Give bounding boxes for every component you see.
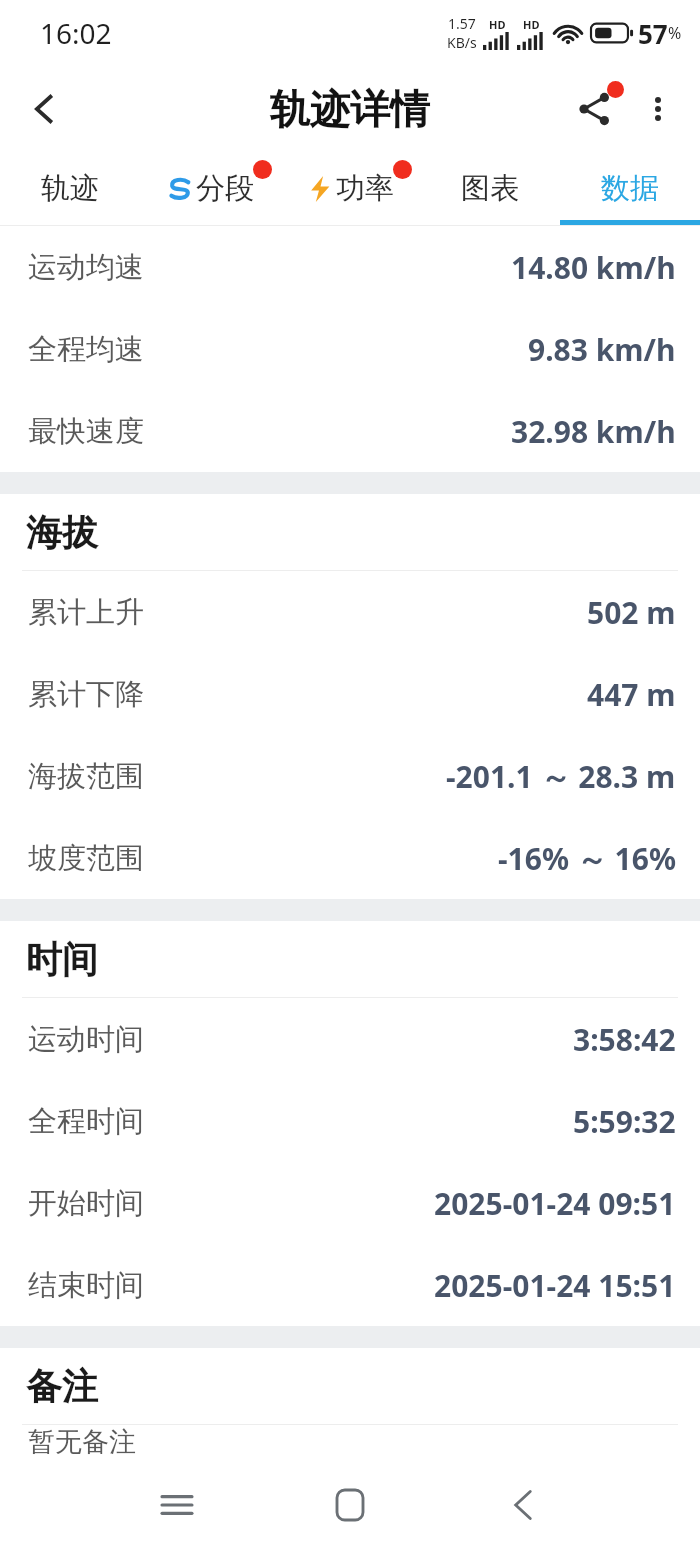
staticText: 5:59:32: [573, 1101, 676, 1142]
staticText: 累计下降: [28, 676, 144, 713]
staticText: 坡度范围: [28, 840, 144, 877]
button[interactable]: Back: [487, 1469, 559, 1541]
button[interactable]: 最快速度: [0, 390, 700, 472]
staticText: 32.98 km/h: [511, 411, 676, 452]
button[interactable]: 运动均速: [0, 226, 700, 308]
button[interactable]: 运动时间: [0, 998, 700, 1080]
staticText: 运动均速: [28, 249, 144, 286]
staticText: 暂无备注: [28, 1425, 136, 1455]
staticText: 全程均速: [28, 331, 144, 368]
staticText: 功率: [336, 170, 394, 207]
button[interactable]: 开始时间: [0, 1162, 700, 1244]
staticText: 16:02: [40, 14, 112, 52]
staticText: 最快速度: [28, 413, 144, 450]
button[interactable]: More options: [626, 77, 690, 141]
button[interactable]: 坡度范围: [0, 817, 700, 899]
staticText: 图表: [461, 170, 519, 207]
button[interactable]: 结束时间: [0, 1244, 700, 1326]
button[interactable]: 全程均速: [0, 308, 700, 390]
staticText: 502 m: [587, 592, 676, 633]
button[interactable]: 图表: [420, 152, 560, 225]
button[interactable]: 海拔范围: [0, 735, 700, 817]
button[interactable]: 数据: [560, 152, 700, 225]
staticText: 时间: [26, 937, 98, 982]
button[interactable]: Home: [314, 1469, 386, 1541]
button[interactable]: 分段: [140, 152, 280, 225]
staticText: 海拔: [26, 510, 98, 555]
staticText: 分段: [196, 170, 254, 207]
staticText: 数据: [601, 170, 659, 207]
button[interactable]: 功率: [280, 152, 420, 225]
staticText: 3:58:42: [573, 1019, 676, 1060]
staticText: 开始时间: [28, 1185, 144, 1222]
staticText: 2025-01-24 09:51: [434, 1183, 676, 1224]
button[interactable]: 累计上升: [0, 571, 700, 653]
staticText: 轨迹: [41, 170, 99, 207]
staticText: HD: [489, 17, 506, 32]
button[interactable]: Recent apps: [141, 1469, 213, 1541]
staticText: 447 m: [587, 674, 676, 715]
button[interactable]: 累计下降: [0, 653, 700, 735]
staticText: 备注: [26, 1364, 98, 1409]
staticText: 累计上升: [28, 594, 144, 631]
button[interactable]: 轨迹: [0, 152, 140, 225]
button[interactable]: Share: [562, 77, 626, 141]
staticText: 运动时间: [28, 1021, 144, 1058]
staticText: 14.80 km/h: [511, 247, 676, 288]
staticText: -16% ～ 16%: [498, 838, 676, 879]
staticText: KB/s: [447, 33, 477, 52]
staticText: HD: [523, 17, 540, 32]
staticText: 结束时间: [28, 1267, 144, 1304]
staticText: 2025-01-24 15:51: [434, 1265, 676, 1306]
button[interactable]: Back: [14, 78, 76, 140]
staticText: -201.1 ～ 28.3 m: [446, 756, 676, 797]
staticText: 全程时间: [28, 1103, 144, 1140]
staticText: %: [668, 22, 682, 44]
staticText: 海拔范围: [28, 758, 144, 795]
button[interactable]: 全程时间: [0, 1080, 700, 1162]
staticText: 轨迹详情: [270, 84, 430, 134]
staticText: 1.57: [448, 14, 476, 33]
staticText: 9.83 km/h: [528, 329, 676, 370]
staticText: 57: [638, 16, 668, 51]
